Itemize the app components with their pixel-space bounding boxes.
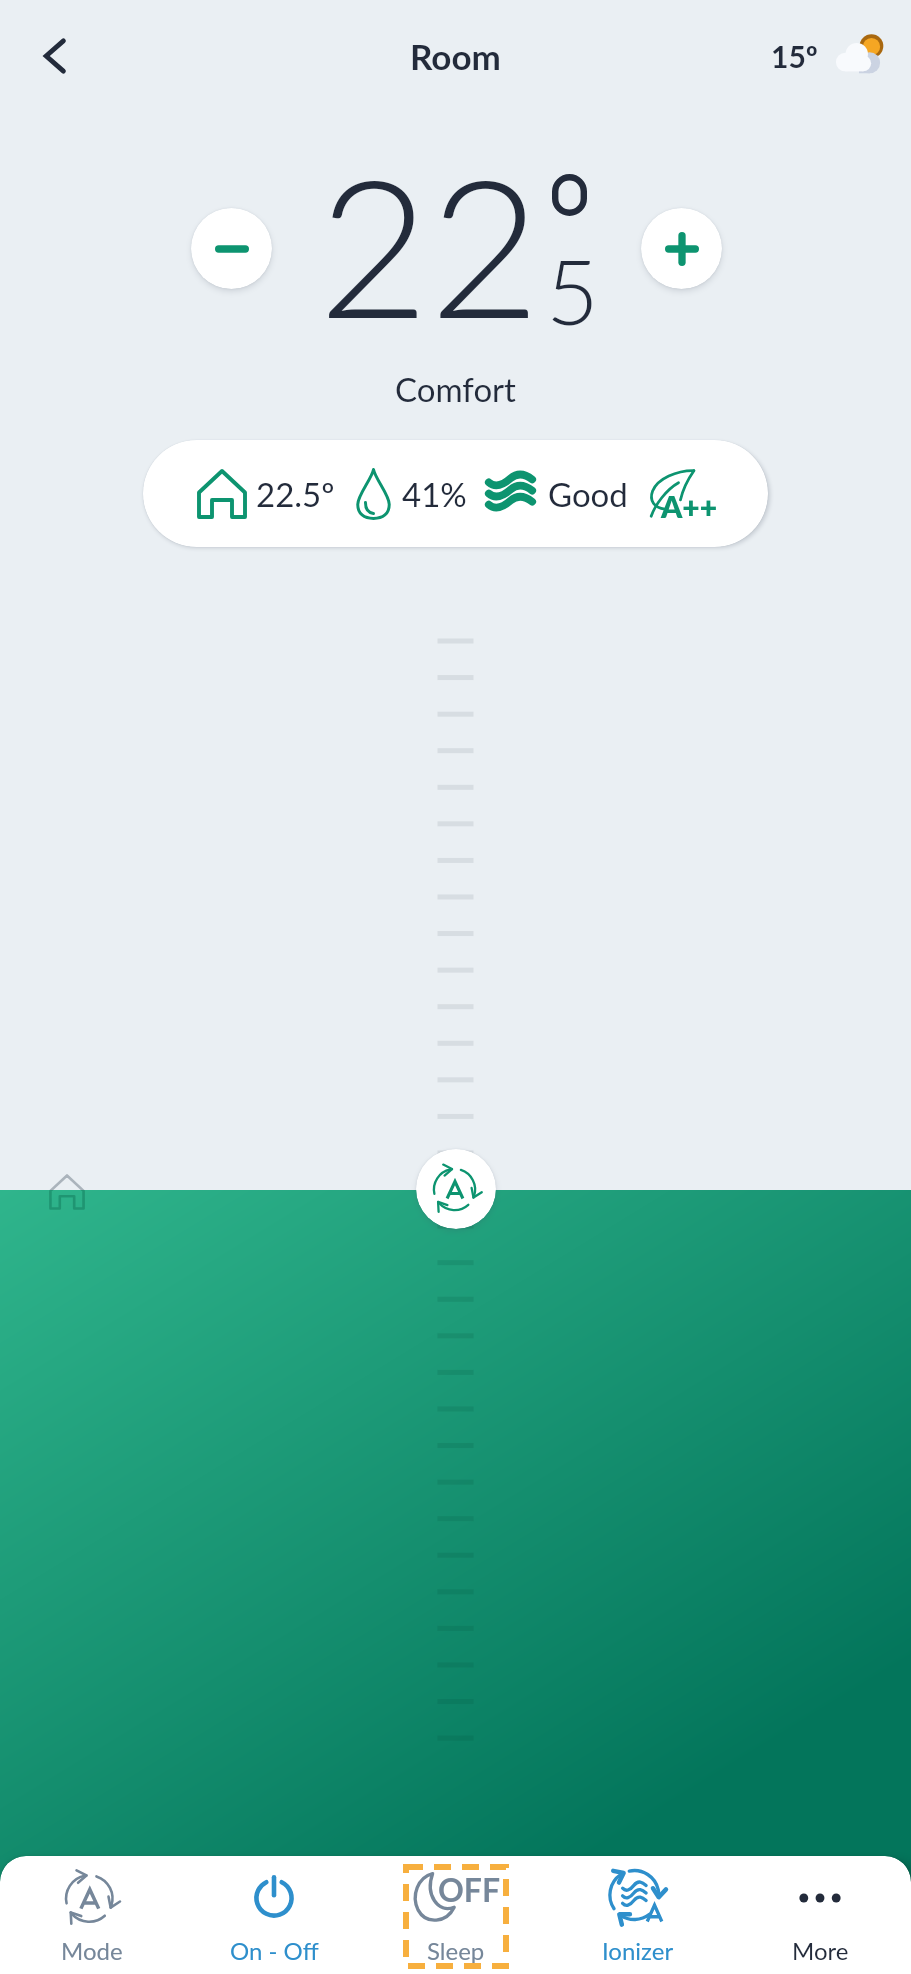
staticText: A++ — [661, 488, 718, 524]
button[interactable]: Increase temperature — [641, 208, 722, 289]
button[interactable]: Ionizer — [547, 1856, 729, 1974]
staticText: More — [792, 1936, 849, 1965]
button[interactable]: 22.5º — [143, 440, 768, 547]
button[interactable]: More — [729, 1856, 911, 1974]
staticText: Ionizer — [602, 1936, 674, 1965]
staticText: On - Off — [230, 1936, 319, 1965]
staticText: 15º — [771, 38, 818, 74]
button[interactable]: On - Off — [183, 1856, 365, 1974]
button[interactable]: Auto fan speed — [416, 1149, 496, 1229]
staticText: Comfort — [0, 369, 911, 409]
staticText: Mode — [61, 1936, 123, 1965]
staticText: 22.5º — [256, 474, 335, 514]
staticText: Room — [410, 35, 501, 77]
button[interactable]: Decrease temperature — [191, 208, 272, 289]
staticText: OFF — [438, 1870, 501, 1908]
staticText: 5 — [546, 235, 599, 344]
staticText: Sleep — [427, 1936, 485, 1965]
button[interactable]: OFF — [365, 1856, 547, 1974]
button[interactable]: Back — [24, 25, 86, 87]
staticText: 41% — [402, 474, 467, 514]
button[interactable]: Mode — [0, 1856, 183, 1974]
staticText: Good — [548, 474, 628, 514]
staticText: 22 — [318, 128, 541, 358]
button[interactable]: Weather 15 degrees — [771, 24, 891, 88]
